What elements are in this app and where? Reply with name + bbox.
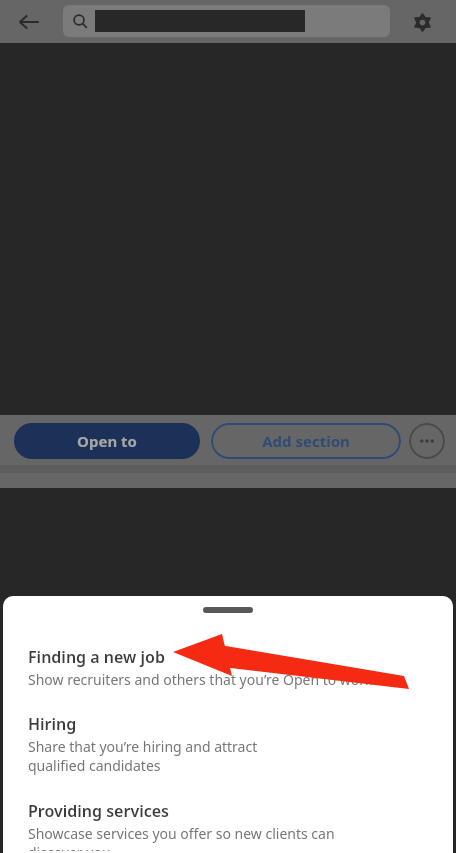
button[interactable]: Providing services [3, 798, 453, 853]
staticText: Add section [262, 431, 350, 451]
button[interactable]: Hiring [3, 711, 453, 777]
staticText: Open to [77, 431, 137, 451]
staticText: Show recruiters and others that you’re O… [28, 670, 373, 689]
staticText: Providing services [28, 800, 169, 822]
button[interactable]: Back [14, 7, 44, 37]
staticText: discover you [28, 843, 111, 851]
staticText: qualified candidates [28, 756, 161, 775]
staticText: Hiring [28, 713, 77, 735]
button[interactable]: Settings [406, 6, 438, 38]
staticText: Showcase services you offer so new clien… [28, 824, 335, 843]
staticText: Finding a new job [28, 646, 165, 668]
staticText: Share that you’re hiring and attract [28, 737, 258, 756]
button[interactable]: Finding a new job [3, 644, 453, 691]
button[interactable]: Add section [211, 423, 401, 459]
button[interactable]: Open to [14, 423, 200, 459]
button[interactable] [63, 5, 390, 37]
button[interactable]: More options [409, 423, 445, 459]
